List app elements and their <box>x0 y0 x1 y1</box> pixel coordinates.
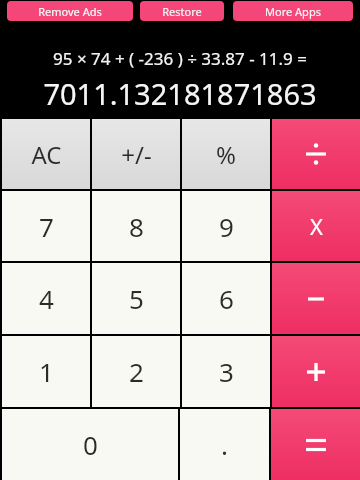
button[interactable]: plus <box>272 336 360 407</box>
button[interactable]: X <box>272 191 360 261</box>
staticText: AC <box>31 138 62 171</box>
staticText: 0 <box>83 427 98 462</box>
button[interactable]: Remove Ads <box>7 1 133 21</box>
button[interactable]: 5 <box>92 263 180 334</box>
staticText: More Apps <box>265 4 321 19</box>
staticText: 5 <box>129 281 144 316</box>
button[interactable]: 3 <box>182 336 270 407</box>
button[interactable]: +/- <box>92 119 180 189</box>
button[interactable]: 1 <box>2 336 90 407</box>
staticText: 7 <box>39 209 54 244</box>
button[interactable]: 7 <box>2 191 90 261</box>
staticText: % <box>216 138 236 171</box>
button[interactable]: 0 <box>2 409 178 480</box>
staticText: Remove Ads <box>38 4 102 19</box>
staticText: 2 <box>129 354 144 389</box>
button[interactable]: AC <box>2 119 90 189</box>
staticText: 95 × 74 + ( -236 ) ÷ 33.87 - 11.9 = <box>53 47 307 70</box>
button[interactable]: 6 <box>182 263 270 334</box>
staticText: 9 <box>219 209 234 244</box>
staticText: 1 <box>39 354 54 389</box>
staticText: 4 <box>39 281 54 316</box>
button[interactable]: 4 <box>2 263 90 334</box>
button[interactable]: minus <box>272 263 360 334</box>
button[interactable]: 2 <box>92 336 180 407</box>
staticText: 6 <box>219 281 234 316</box>
button[interactable]: equals <box>271 409 360 480</box>
staticText: Restore <box>162 4 202 19</box>
button[interactable]: Restore <box>140 1 224 21</box>
staticText: X <box>310 211 323 241</box>
button[interactable]: divide <box>272 119 360 189</box>
staticText: 3 <box>219 354 234 389</box>
button[interactable]: . <box>180 409 269 480</box>
button[interactable]: 9 <box>182 191 270 261</box>
button[interactable]: More Apps <box>233 1 353 21</box>
staticText: 8 <box>129 209 144 244</box>
staticText: . <box>221 427 228 462</box>
staticText: 7011.132181871863 <box>43 74 317 113</box>
button[interactable]: 8 <box>92 191 180 261</box>
staticText: +/- <box>121 138 152 171</box>
button[interactable]: % <box>182 119 270 189</box>
